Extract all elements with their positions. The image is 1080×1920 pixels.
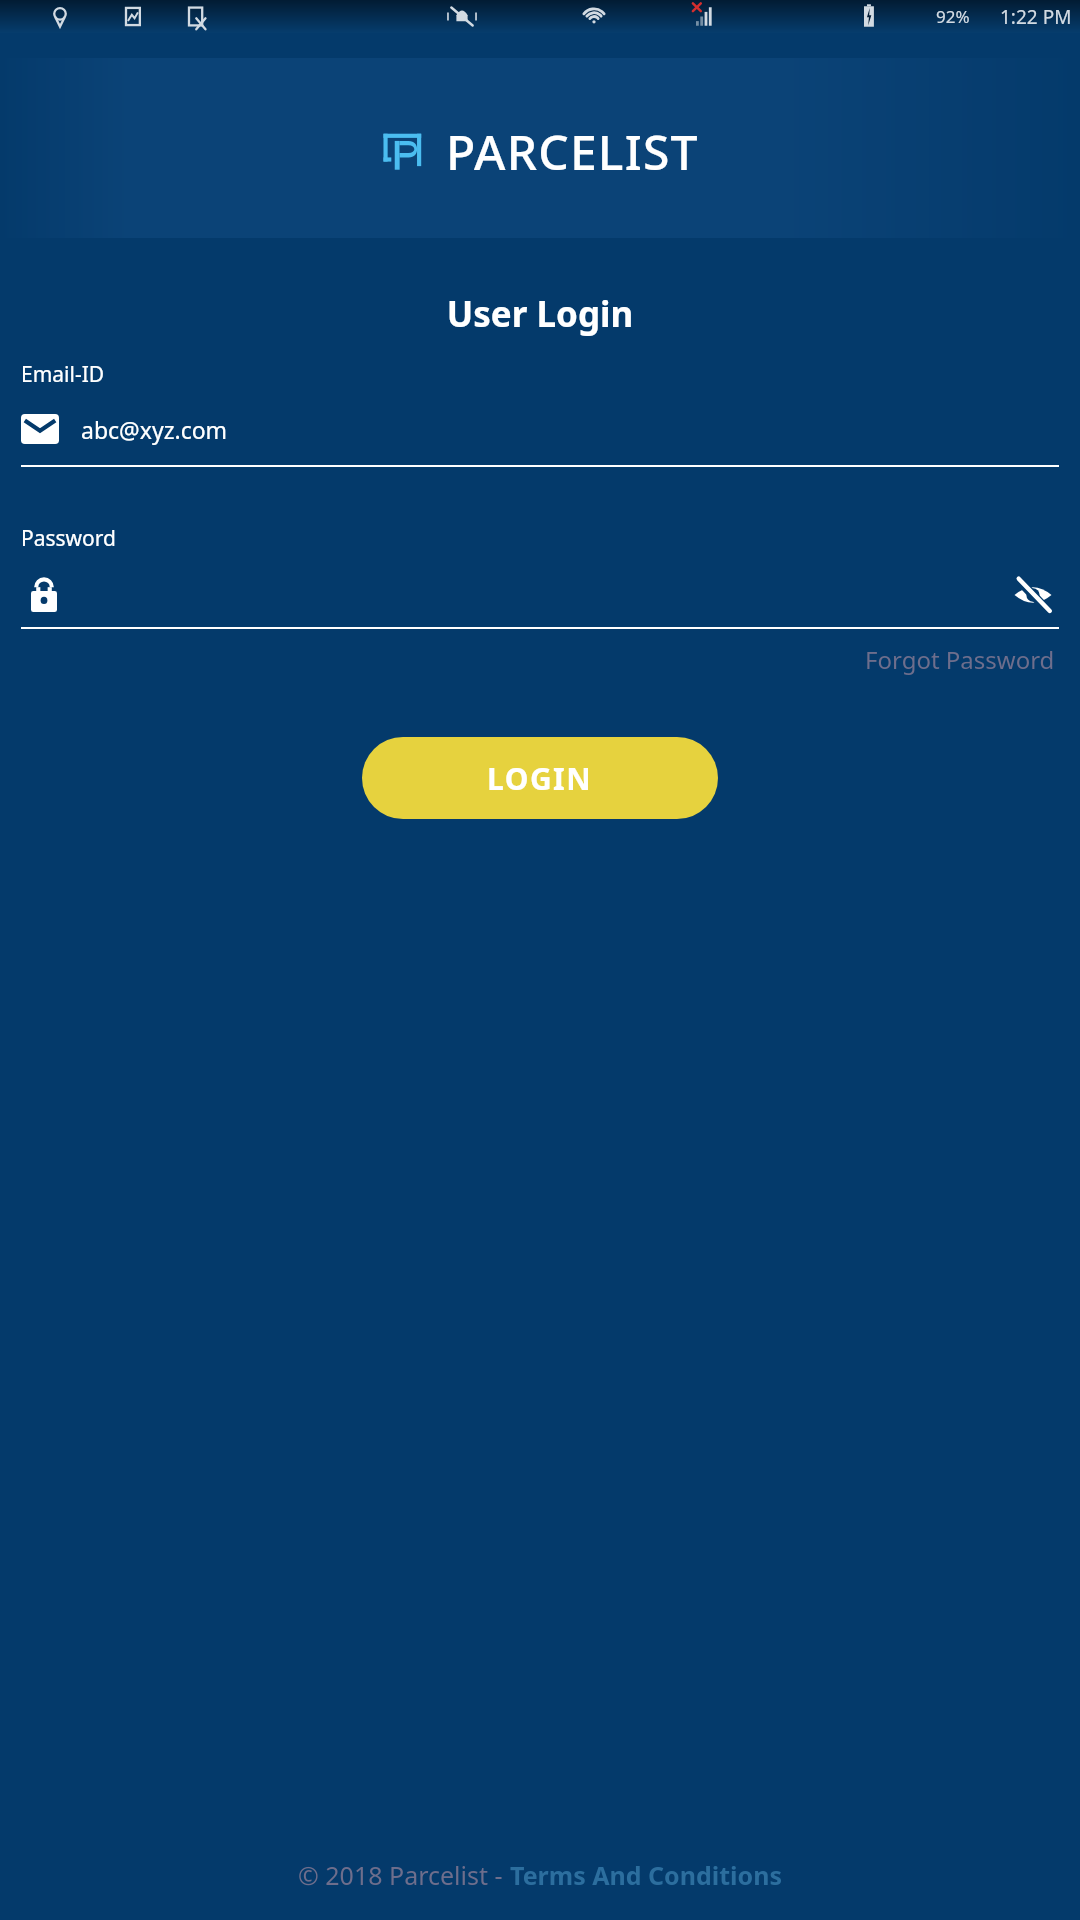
staticText: Forgot Password [865,643,1055,676]
button[interactable]: LOGIN [362,737,718,819]
staticText: Email-ID [21,360,105,389]
staticText: abc@xyz.com [81,414,228,445]
button[interactable]: Password [21,572,67,618]
staticText: LOGIN [487,758,593,799]
button[interactable]: Show password [1007,571,1059,619]
staticText: PARCELIST [446,119,699,184]
button[interactable]: Terms And Conditions [510,1858,783,1892]
staticText: Password [21,524,116,553]
staticText: © 2018 Parcelist - [298,1858,510,1892]
staticText: 1:22 PM [1000,4,1072,30]
staticText: User Login [0,290,1080,338]
staticText: Terms And Conditions [510,1858,783,1892]
button[interactable]: abc@xyz.com [21,407,1059,451]
button[interactable]: Forgot Password [861,639,1059,680]
staticText: 92% [936,5,970,28]
